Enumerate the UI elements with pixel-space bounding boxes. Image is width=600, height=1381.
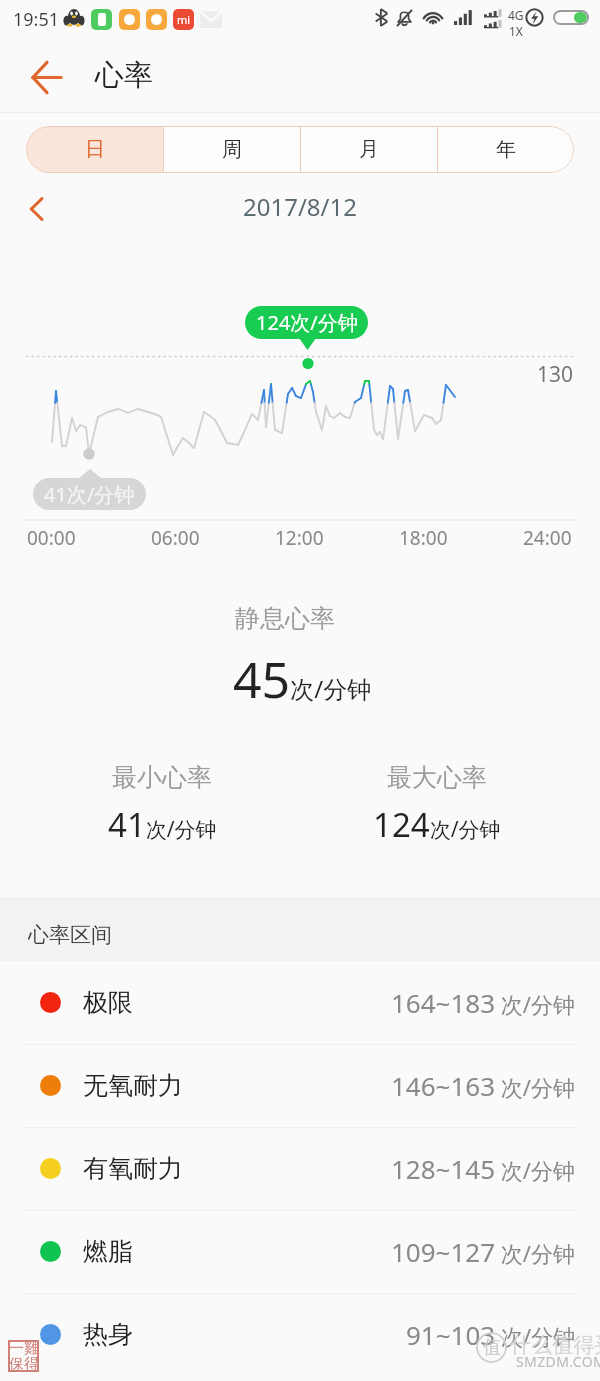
- staticText: 109~127 次/分钟: [391, 1234, 576, 1269]
- staticText: 一雞 保得: [9, 1339, 39, 1371]
- staticText: 日: [85, 137, 105, 162]
- staticText: 值: [483, 1336, 501, 1359]
- staticText: 静息心率: [235, 603, 335, 633]
- staticText: 年: [496, 137, 516, 162]
- staticText: mi: [177, 12, 191, 27]
- staticText: 00:00: [27, 525, 76, 551]
- staticText: 什么值得买: [510, 1332, 600, 1358]
- staticText: 最大心率: [387, 762, 487, 792]
- button[interactable]: 月: [301, 126, 437, 173]
- staticText: 无氧耐力: [83, 1070, 183, 1101]
- staticText: 12:00: [275, 525, 324, 551]
- staticText: 18:00: [399, 525, 448, 551]
- staticText: 心率: [95, 57, 153, 94]
- staticText: 19:51: [13, 7, 60, 32]
- staticText: 41次/分钟: [108, 802, 217, 844]
- button[interactable]: 日: [26, 126, 163, 173]
- staticText: 91~103 次/分钟: [406, 1317, 576, 1352]
- staticText: 有氧耐力: [83, 1153, 183, 1184]
- staticText: 45次/分钟: [233, 645, 372, 703]
- staticText: 极限: [83, 987, 133, 1018]
- button[interactable]: Previous day: [14, 187, 58, 231]
- staticText: 124次/分钟: [373, 802, 501, 844]
- staticText: 41次/分钟: [44, 481, 135, 508]
- staticText: 心率区间: [28, 922, 112, 948]
- button[interactable]: 无氧耐力: [0, 1044, 600, 1127]
- staticText: 146~163 次/分钟: [391, 1068, 576, 1103]
- staticText: SMZDM.COM: [516, 1352, 600, 1371]
- staticText: 130: [537, 360, 574, 389]
- staticText: 热身: [83, 1319, 133, 1350]
- staticText: 164~183 次/分钟: [391, 985, 576, 1020]
- staticText: 1X: [509, 23, 523, 39]
- button[interactable]: Back: [11, 41, 83, 113]
- staticText: 周: [222, 137, 242, 162]
- staticText: 124次/分钟: [256, 309, 358, 336]
- button[interactable]: 年: [438, 126, 574, 173]
- staticText: 最小心率: [112, 762, 212, 792]
- staticText: 燃脂: [83, 1236, 133, 1267]
- button[interactable]: 燃脂: [0, 1210, 600, 1293]
- staticText: 2017/8/12: [243, 190, 357, 223]
- button[interactable]: 热身: [0, 1293, 600, 1376]
- staticText: 06:00: [151, 525, 200, 551]
- button[interactable]: 极限: [0, 961, 600, 1044]
- staticText: 月: [359, 137, 379, 162]
- button[interactable]: 有氧耐力: [0, 1127, 600, 1210]
- staticText: 4G: [508, 7, 524, 23]
- staticText: 24:00: [523, 525, 572, 551]
- staticText: 128~145 次/分钟: [391, 1151, 576, 1186]
- button[interactable]: 周: [164, 126, 300, 173]
